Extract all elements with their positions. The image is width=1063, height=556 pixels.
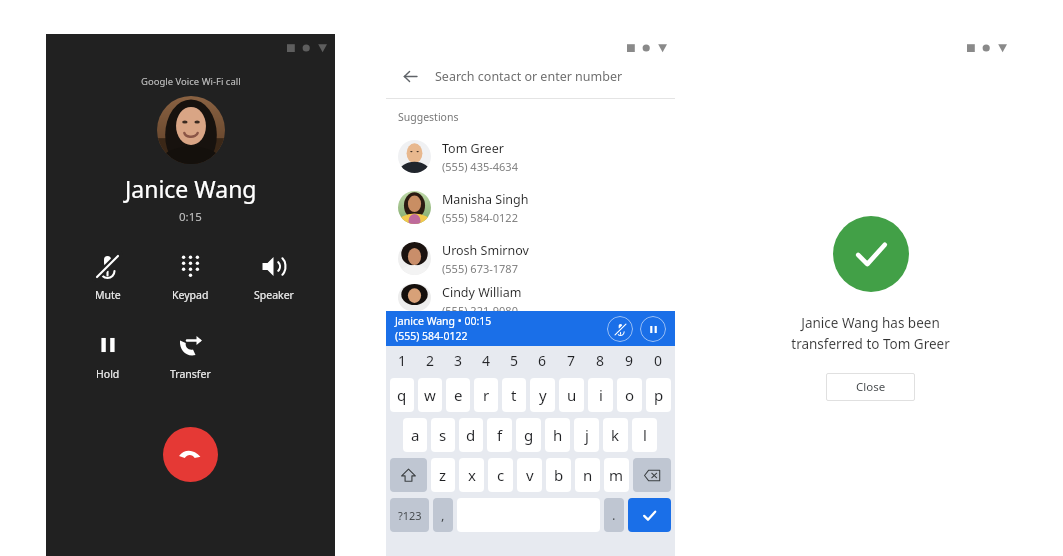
staticText: Close — [856, 379, 886, 395]
staticText: Cindy William — [442, 284, 522, 301]
staticText: Suggestions — [398, 110, 459, 124]
button[interactable]: 9 — [615, 346, 644, 375]
button[interactable]: x — [459, 458, 484, 492]
button[interactable]: Transfer — [149, 328, 232, 383]
button[interactable]: 4 — [472, 346, 500, 375]
button[interactable]: Hold — [640, 316, 666, 342]
button[interactable]: a — [403, 418, 427, 452]
staticText: (555) 435-4634 — [442, 159, 518, 174]
staticText: 5 — [510, 351, 519, 370]
button[interactable]: 6 — [528, 346, 557, 375]
button[interactable]: b — [546, 458, 571, 492]
button[interactable]: c — [488, 458, 513, 492]
button[interactable]: g — [516, 418, 541, 452]
button[interactable]: Close — [826, 373, 915, 401]
button[interactable]: f — [487, 418, 512, 452]
button[interactable]: Hold — [66, 328, 149, 383]
button[interactable]: Speaker — [232, 249, 315, 304]
staticText: e — [454, 385, 463, 405]
staticText: 1 — [398, 351, 407, 370]
button[interactable]: Shift — [390, 458, 427, 492]
staticText: Hold — [96, 367, 120, 381]
staticText: 3 — [454, 351, 463, 370]
button[interactable]: 5 — [500, 346, 528, 375]
staticText: Speaker — [254, 288, 294, 302]
staticText: Google Voice Wi-Fi call — [141, 75, 241, 88]
staticText: Keypad — [172, 288, 209, 302]
button[interactable]: Mute — [607, 316, 633, 342]
staticText: Janice Wang has been transferred to Tom … — [726, 314, 1015, 353]
staticText: u — [567, 385, 577, 405]
button[interactable]: Mute — [66, 249, 149, 304]
button[interactable]: l — [632, 418, 657, 452]
button[interactable]: t — [502, 378, 526, 412]
button[interactable]: h — [545, 418, 570, 452]
button[interactable]: o — [617, 378, 642, 412]
staticText: w — [424, 385, 436, 405]
button[interactable]: m — [604, 458, 629, 492]
staticText: y — [539, 385, 547, 405]
staticText: h — [553, 425, 563, 445]
button[interactable]: Enter — [628, 498, 671, 532]
staticText: b — [554, 465, 564, 485]
staticText: z — [439, 465, 447, 485]
button[interactable]: 8 — [586, 346, 615, 375]
button[interactable]: Manisha Singh — [386, 182, 675, 233]
staticText: . — [612, 506, 616, 524]
button[interactable]: y — [530, 378, 555, 412]
staticText: Tom Greer — [442, 140, 504, 157]
staticText: 2 — [426, 351, 435, 370]
button[interactable]: w — [418, 378, 442, 412]
button[interactable]: s — [431, 418, 455, 452]
button[interactable]: u — [559, 378, 584, 412]
button[interactable]: Tom Greer — [386, 131, 675, 182]
staticText: 4 — [482, 351, 491, 370]
button[interactable]: 2 — [416, 346, 444, 375]
button[interactable]: Keypad — [149, 249, 232, 304]
staticText: (555) 221-9080 — [442, 303, 518, 311]
button[interactable]: r — [474, 378, 498, 412]
button[interactable]: q — [390, 378, 414, 412]
staticText: m — [609, 465, 624, 485]
button[interactable]: p — [646, 378, 671, 412]
button[interactable]: End call — [163, 427, 218, 482]
staticText: d — [466, 425, 476, 445]
button[interactable]: 1 — [388, 346, 416, 375]
staticText: v — [526, 465, 534, 485]
button[interactable]: Janice Wang • 00:15 — [386, 311, 675, 346]
button[interactable]: Back — [396, 62, 424, 90]
button[interactable]: . — [604, 498, 624, 532]
staticText: Janice Wang • 00:15 — [395, 314, 492, 328]
button[interactable]: d — [459, 418, 483, 452]
button[interactable]: 7 — [557, 346, 586, 375]
button[interactable]: , — [433, 498, 453, 532]
staticText: 9 — [625, 351, 634, 370]
button[interactable]: Back — [386, 54, 675, 98]
button[interactable]: j — [574, 418, 599, 452]
button[interactable]: n — [575, 458, 600, 492]
staticText: Transfer — [170, 367, 211, 381]
button[interactable]: 0 — [644, 346, 673, 375]
button[interactable]: Backspace — [633, 458, 671, 492]
button[interactable]: k — [603, 418, 628, 452]
staticText: 0 — [654, 351, 663, 370]
button[interactable]: v — [517, 458, 542, 492]
button[interactable]: 3 — [444, 346, 472, 375]
staticText: c — [497, 465, 505, 485]
staticText: (555) 673-1787 — [442, 261, 518, 276]
button[interactable]: i — [588, 378, 613, 412]
staticText: Mute — [95, 288, 121, 302]
staticText: Search contact or enter number — [435, 68, 623, 85]
staticText: 0:15 — [179, 209, 202, 225]
button[interactable]: z — [431, 458, 455, 492]
button[interactable]: Urosh Smirnov — [386, 233, 675, 284]
staticText: i — [599, 385, 603, 405]
staticText: p — [654, 385, 664, 405]
staticText: s — [439, 425, 447, 445]
staticText: Urosh Smirnov — [442, 242, 529, 259]
staticText: , — [441, 506, 445, 524]
button[interactable]: Cindy William — [386, 284, 675, 311]
button[interactable]: e — [446, 378, 470, 412]
button[interactable]: ?123 — [390, 498, 429, 532]
